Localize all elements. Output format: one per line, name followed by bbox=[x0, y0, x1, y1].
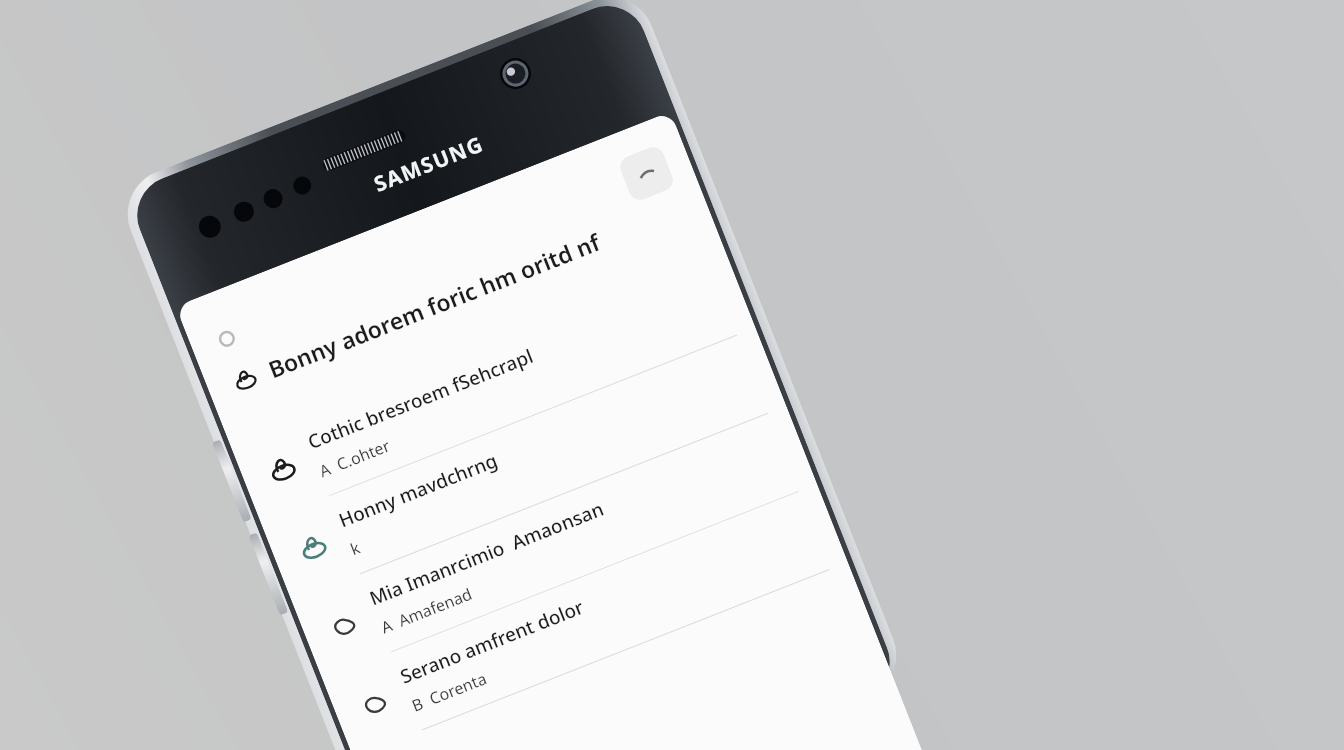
staticText: Cothic bresroem fSehcrapl bbox=[304, 343, 537, 455]
staticText: A Amafenad bbox=[378, 583, 475, 638]
staticText: B Corenta bbox=[408, 667, 490, 717]
staticText: Honny mavdchrng bbox=[335, 447, 502, 533]
button[interactable]: Honny mavdchrng bbox=[261, 328, 787, 601]
button[interactable]: Serano amfrent dolor bbox=[322, 484, 848, 750]
button[interactable]: Mia Imanrcimio Amaonsan bbox=[292, 406, 817, 679]
button[interactable]: Cothic bresroem fSehcrapl bbox=[230, 250, 756, 523]
other: Volume down bbox=[248, 532, 288, 616]
staticText: k bbox=[347, 536, 363, 560]
staticText: A C.ohter bbox=[316, 434, 393, 482]
button[interactable]: More options bbox=[617, 144, 676, 203]
staticText: Bonny adorem foric hm oritd nf bbox=[264, 226, 604, 384]
staticText: Serano amfrent dolor bbox=[396, 594, 587, 690]
staticText: Mia Imanrcimio Amaonsan bbox=[366, 496, 608, 611]
other: Volume up bbox=[212, 439, 252, 522]
staticText: SAMSUNG bbox=[370, 129, 488, 199]
